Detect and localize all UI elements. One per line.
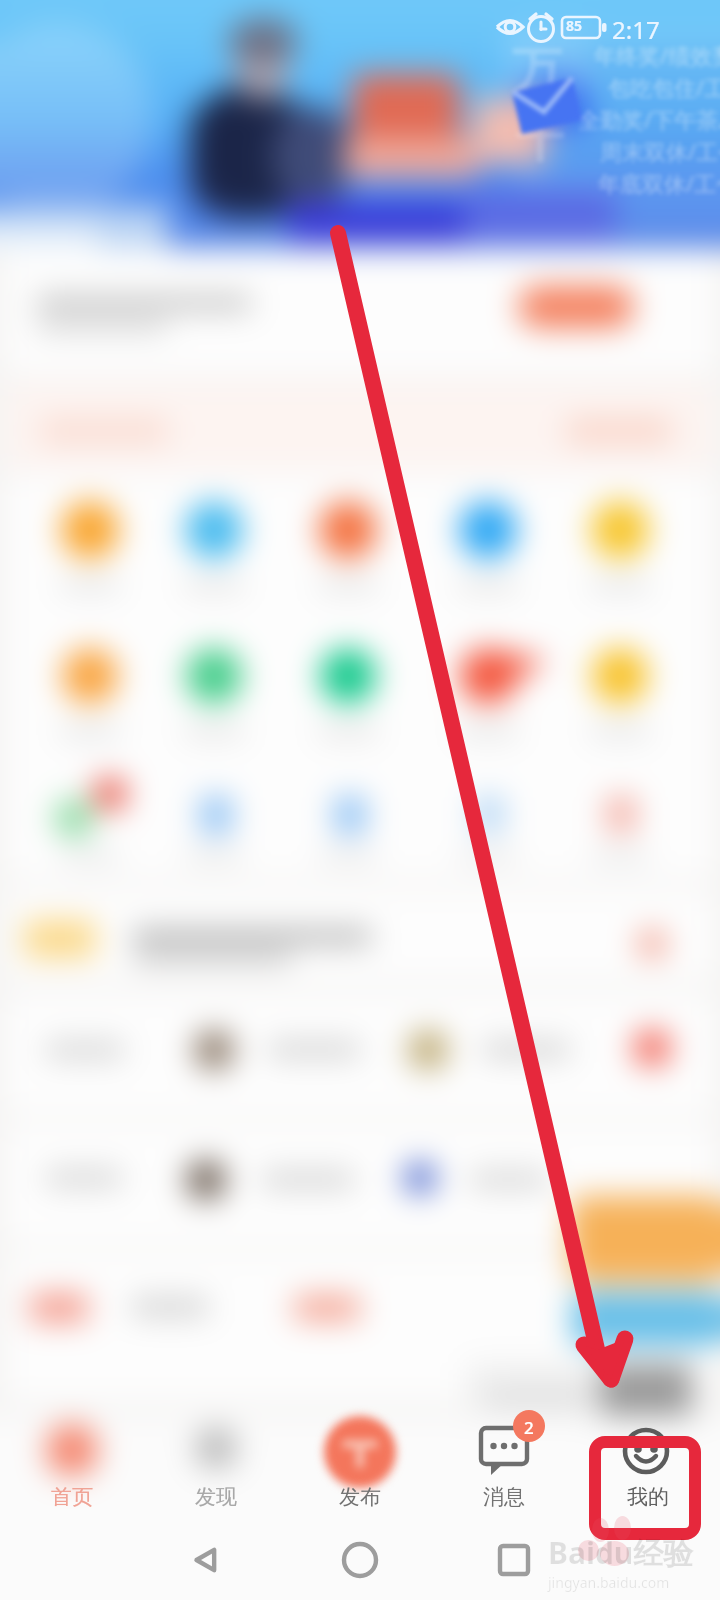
staticText: 周末双休/工作餐 bbox=[600, 136, 720, 166]
staticText: 2:17 bbox=[612, 13, 660, 46]
staticText: 包吃包住/工作餐 bbox=[608, 72, 720, 102]
staticText: 千 bbox=[516, 110, 564, 170]
staticText: 我的 bbox=[627, 1484, 669, 1510]
button[interactable]: Back bbox=[150, 1520, 262, 1600]
button[interactable]: 首页 bbox=[0, 1414, 144, 1520]
staticText: 2 bbox=[524, 1416, 534, 1439]
staticText: 首页 bbox=[51, 1484, 93, 1510]
staticText: 发布 bbox=[339, 1484, 381, 1510]
staticText: jingyan.baidu.com bbox=[548, 1573, 670, 1592]
staticText: 消息 bbox=[483, 1484, 525, 1510]
button[interactable]: 消息 bbox=[432, 1414, 576, 1520]
button[interactable]: Home bbox=[304, 1520, 416, 1600]
staticText: 全勤奖/下午茶/绩效 bbox=[578, 104, 720, 134]
staticText: 万 bbox=[512, 40, 562, 103]
staticText: 年终奖/绩效奖金 bbox=[594, 40, 720, 70]
button[interactable]: 发现 bbox=[144, 1414, 288, 1520]
staticText: 年底双休/工作餐 bbox=[598, 168, 720, 198]
staticText: 85 bbox=[566, 16, 583, 35]
staticText: 发现 bbox=[195, 1484, 237, 1510]
button[interactable]: 发布 bbox=[288, 1414, 432, 1520]
staticText: Baidu经验 bbox=[548, 1532, 694, 1573]
button[interactable]: 我的 bbox=[576, 1414, 720, 1520]
button[interactable]: Recent apps bbox=[458, 1520, 570, 1600]
